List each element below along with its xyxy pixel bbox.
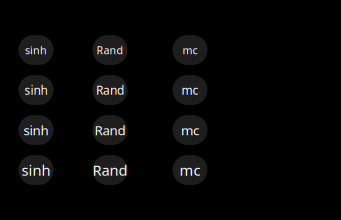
staticText: mc [179,160,200,180]
staticText: Rand [96,43,123,57]
staticText: sinh [25,43,47,57]
staticText: sinh [21,160,50,180]
staticText: sinh [23,121,48,139]
staticText: Rand [94,121,125,139]
staticText: sinh [24,82,47,98]
staticText: mc [181,121,199,139]
staticText: Rand [96,82,124,98]
staticText: Rand [92,160,127,180]
staticText: mc [181,82,198,98]
staticText: mc [182,43,197,57]
